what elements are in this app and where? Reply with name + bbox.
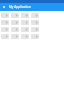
button[interactable]: Navigate up bbox=[1, 4, 7, 10]
button[interactable]: Item bbox=[1, 27, 9, 32]
button[interactable]: Item bbox=[21, 34, 29, 39]
button[interactable]: Item bbox=[11, 27, 19, 32]
button[interactable]: Item bbox=[11, 13, 19, 18]
button[interactable]: Item bbox=[11, 20, 19, 25]
button[interactable]: Item bbox=[31, 34, 39, 39]
button[interactable]: Item bbox=[1, 20, 9, 25]
button[interactable]: Item bbox=[1, 34, 9, 39]
button[interactable]: Item bbox=[1, 13, 9, 18]
button[interactable]: Item bbox=[11, 34, 19, 39]
button[interactable]: Item bbox=[31, 20, 39, 25]
button[interactable]: Item bbox=[21, 13, 29, 18]
staticText: My Application bbox=[9, 5, 31, 9]
button[interactable]: Item bbox=[21, 27, 29, 32]
button[interactable]: Item bbox=[31, 27, 39, 32]
button[interactable]: Item bbox=[21, 20, 29, 25]
button[interactable]: Item bbox=[31, 13, 39, 18]
